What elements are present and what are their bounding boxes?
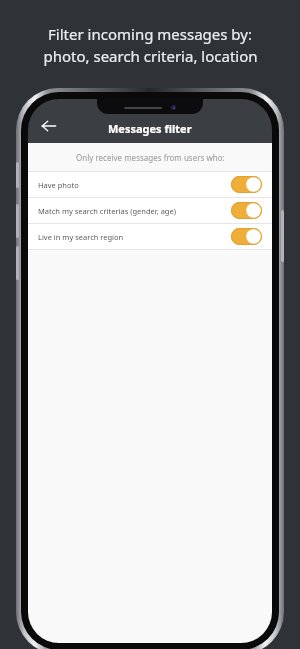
staticText: Messages filter (108, 121, 192, 136)
staticText: Have photo (38, 180, 231, 190)
button[interactable]: Toggle on (231, 202, 262, 219)
staticText: Filter incoming messages by: (48, 24, 252, 44)
button[interactable]: Live in my search region (28, 224, 272, 249)
button[interactable]: Toggle on (231, 176, 262, 193)
button[interactable]: Back (32, 109, 66, 143)
button[interactable]: Toggle on (231, 228, 262, 245)
staticText: photo, search criteria, location (43, 46, 258, 66)
staticText: Match my search criterias (gender, age) (38, 206, 231, 216)
staticText: Live in my search region (38, 232, 231, 242)
staticText: Only receive messages from users who: (76, 152, 225, 163)
button[interactable]: Have photo (28, 172, 272, 197)
button[interactable]: Match my search criterias (gender, age) (28, 198, 272, 223)
